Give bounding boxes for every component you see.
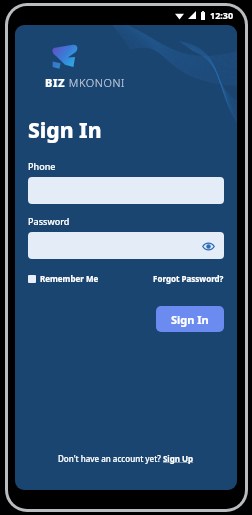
staticText: Sign In <box>28 116 102 145</box>
staticText: Remember Me <box>40 273 99 284</box>
staticText: Password <box>28 215 70 227</box>
button[interactable] <box>28 177 224 204</box>
staticText: 12:30 <box>210 9 234 21</box>
button[interactable]: Show password <box>28 232 224 259</box>
staticText: Sign In <box>171 312 209 327</box>
staticText: BIZ MKONONI <box>45 75 126 90</box>
button[interactable]: Forgot Password? <box>153 273 224 284</box>
button[interactable]: Sign In <box>156 306 224 332</box>
button[interactable]: Don't have an account yet? Sign Up <box>58 453 194 464</box>
button[interactable]: Show password <box>201 239 215 253</box>
button[interactable]: Remember Me <box>28 273 99 284</box>
staticText: Phone <box>28 160 56 172</box>
